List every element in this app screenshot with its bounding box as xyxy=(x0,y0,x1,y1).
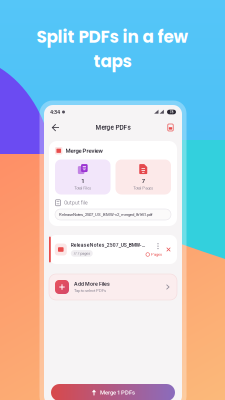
staticText: 1 xyxy=(81,178,84,184)
staticText: ReleaseNotes_2507_US_BMW-v2.pdf xyxy=(71,242,146,248)
staticText: Split PDFs in a few xyxy=(36,25,188,48)
staticText: Tap to select PDFs xyxy=(74,288,106,293)
staticText: 4:34 xyxy=(50,109,60,115)
staticText: ReleaseNotes_2507_US_BMW-v2_merged_8r1t5… xyxy=(59,212,152,217)
staticText: Merge Preview xyxy=(65,147,102,154)
staticText: Total Files xyxy=(74,185,91,190)
button[interactable]: Reorder file xyxy=(154,242,162,250)
staticText: Merge 1 PDFs xyxy=(100,389,135,396)
button[interactable]: Add More Files xyxy=(49,274,177,300)
staticText: Total Pages xyxy=(133,185,153,190)
button[interactable]: Merge 1 PDFs xyxy=(51,384,175,400)
staticText: taps xyxy=(93,49,131,73)
staticText: 7 xyxy=(142,178,145,184)
button[interactable]: Back xyxy=(49,121,62,134)
button[interactable]: Remove file xyxy=(164,245,173,254)
staticText: Output file xyxy=(64,200,88,206)
button[interactable]: Export PDF xyxy=(164,121,177,134)
staticText: Merge PDFs xyxy=(95,124,130,131)
button[interactable]: Pages xyxy=(146,252,162,257)
staticText: 7/7 pages xyxy=(73,251,90,256)
staticText: Pages xyxy=(151,252,162,257)
staticText: 78 xyxy=(169,110,173,114)
staticText: Add More Files xyxy=(74,281,110,287)
